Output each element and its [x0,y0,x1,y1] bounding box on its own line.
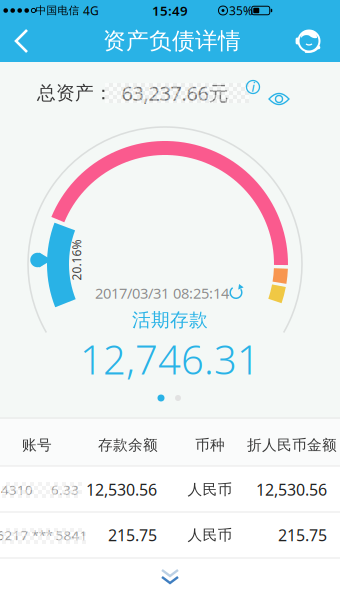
staticText: 12,746.31 [80,332,260,385]
staticText: i [251,79,254,95]
staticText: 2017/03/31 08:25:14 [95,283,229,303]
staticText: 活期存款 [132,308,208,331]
staticText: 12,530.56 [256,479,327,500]
staticText: 折人民币金额 [247,436,337,454]
staticText: 215.75 [108,524,157,546]
staticText: 中国电信 [35,4,79,17]
staticText: 资产负债详情 [103,27,241,55]
button[interactable]: Customer service [292,24,326,58]
staticText: 6217 *** 5841 [0,526,87,544]
staticText: 人民币 [187,526,232,544]
staticText: 63,237.66元 [121,80,228,106]
staticText: 12,530.56 [86,479,157,500]
staticText: 215.75 [278,524,327,546]
button[interactable]: Refresh [227,283,245,301]
staticText: 4G [83,2,99,18]
staticText: 15:49 [152,2,188,19]
button[interactable]: Show more [158,568,182,586]
button[interactable]: 4310 6.33 [0,466,340,512]
button[interactable]: Info [244,78,262,96]
button[interactable]: 6217 *** 5841 [0,512,340,558]
staticText: 4310 6.33 [1,481,79,498]
button[interactable]: Back [2,21,42,61]
staticText: 人民币 [187,480,232,498]
staticText: 币种 [195,436,225,454]
button[interactable]: Hide amount [267,90,291,108]
staticText: 35% [229,2,253,18]
staticText: 20.16% [56,252,97,268]
staticText: 存款余额 [98,436,158,454]
staticText: 总资产： [37,81,113,104]
staticText: 账号 [22,436,52,454]
